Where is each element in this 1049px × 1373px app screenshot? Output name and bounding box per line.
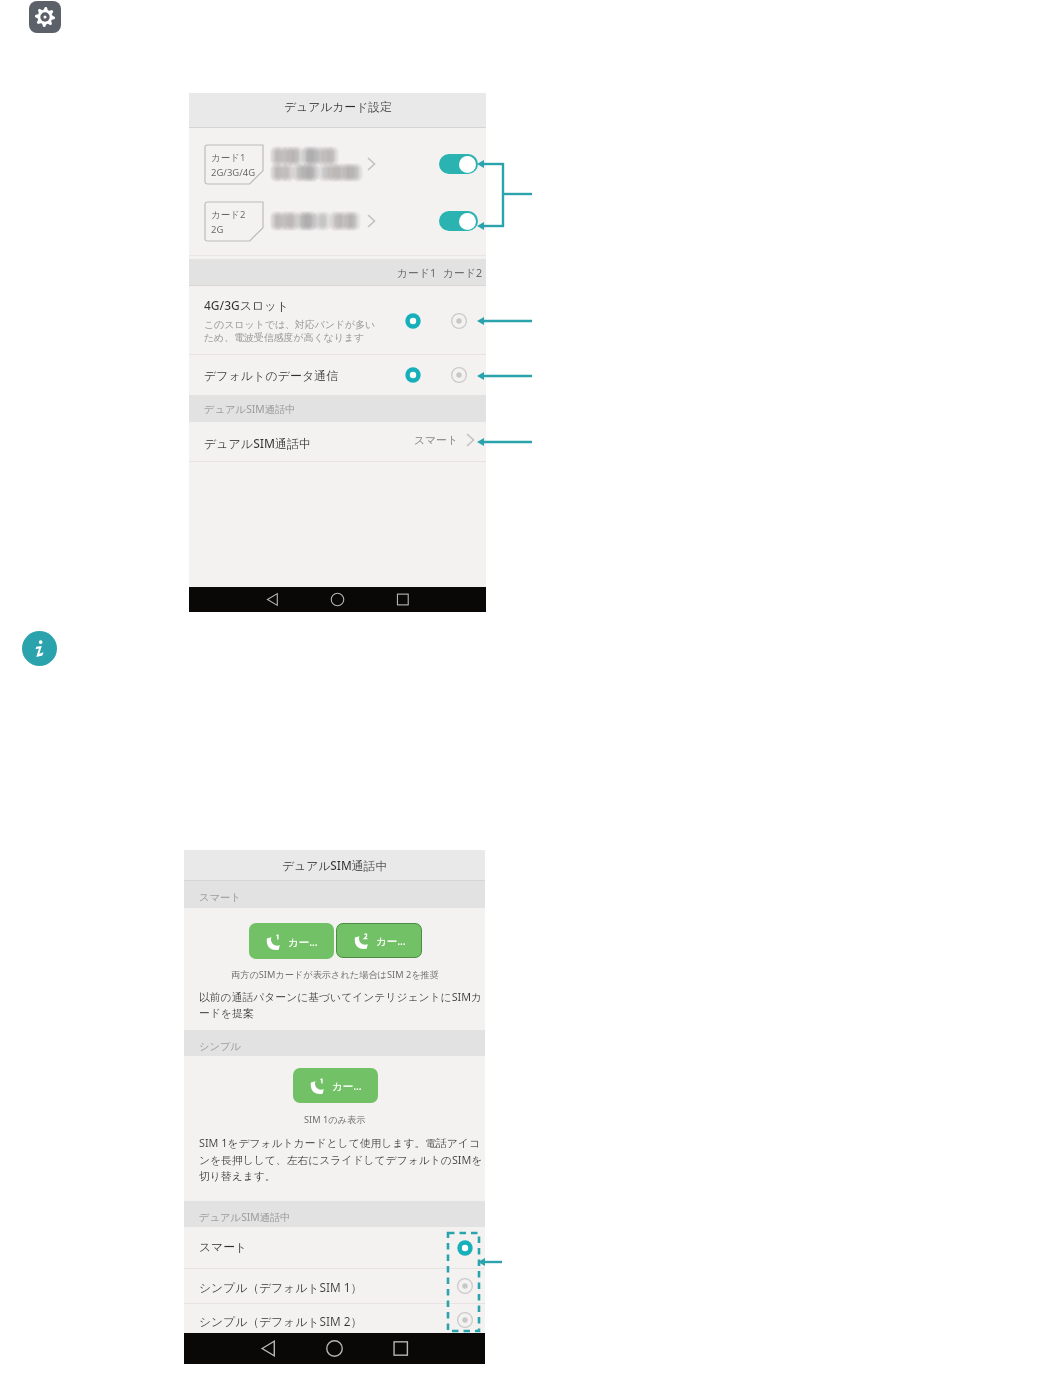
staticText: デフォルトのデータ通信: [204, 368, 339, 383]
staticText: カード1: [211, 151, 246, 164]
button[interactable]: スマート: [184, 1227, 485, 1268]
staticText: カー…: [288, 935, 318, 949]
staticText: 2G: [211, 223, 224, 236]
button[interactable]: シンプル（デフォルトSIM 1）: [184, 1269, 485, 1303]
button[interactable]: カー…: [293, 1068, 378, 1103]
staticText: カード2: [443, 265, 483, 280]
staticText: SIM 1をデフォルトカードとして使用します。電話アイコ ンを長押しして、左右に…: [199, 1135, 483, 1183]
staticText: デュアルカード設定: [284, 100, 392, 115]
staticText: 以前の通話パターンに基づいてインテリジェントにSIMカ ードを提案: [199, 989, 483, 1020]
button[interactable]: Toggle カード2: [439, 211, 478, 231]
button[interactable]: カー…: [336, 923, 422, 958]
staticText: スマート: [199, 891, 241, 904]
staticText: カー…: [376, 934, 406, 948]
staticText: 2G/3G/4G: [211, 166, 256, 179]
button[interactable]: 4G/3Gスロット: [189, 286, 486, 354]
staticText: SIM 1のみ表示: [304, 1113, 366, 1126]
staticText: デュアルSIM通話中: [199, 1210, 291, 1224]
staticText: スマート: [199, 1240, 248, 1255]
staticText: カード2: [211, 208, 246, 221]
staticText: シンプル（デフォルトSIM 1）: [199, 1279, 363, 1295]
staticText: デュアルSIM通話中: [204, 402, 296, 416]
staticText: このスロットでは、対応バンドが多い ため、電波受信感度が高くなります: [204, 318, 376, 344]
button[interactable]: デュアルSIM通話中: [189, 422, 486, 461]
staticText: デュアルSIM通話中: [282, 857, 388, 873]
button[interactable]: カード1 settings: [189, 134, 486, 195]
button[interactable]: Toggle カード1: [439, 154, 478, 174]
staticText: デュアルSIM通話中: [204, 435, 311, 451]
button[interactable]: カー…: [249, 923, 334, 959]
button[interactable]: カード2 settings: [189, 191, 486, 252]
staticText: カー…: [332, 1079, 362, 1093]
staticText: 4G/3Gスロット: [204, 297, 289, 313]
staticText: スマート: [414, 434, 458, 448]
staticText: シンプル（デフォルトSIM 2）: [199, 1313, 363, 1329]
button[interactable]: Settings: [29, 1, 61, 33]
staticText: 両方のSIMカードが表示された場合はSIM 2を推奨: [231, 968, 439, 981]
staticText: シンプル: [199, 1040, 242, 1053]
button[interactable]: シンプル（デフォルトSIM 2）: [184, 1304, 485, 1334]
button[interactable]: デフォルトのデータ通信: [189, 355, 486, 395]
button[interactable]: Information: [22, 631, 57, 666]
staticText: カード1: [397, 265, 437, 280]
